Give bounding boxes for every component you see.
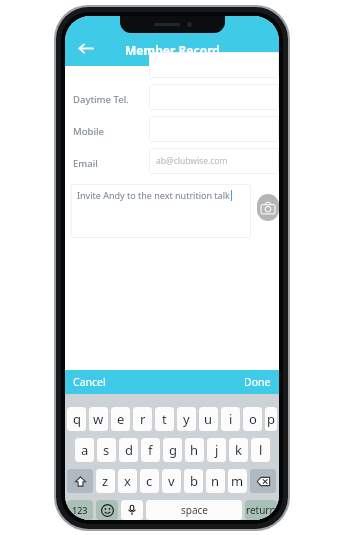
staticText: a — [81, 441, 89, 459]
staticText: n — [211, 472, 220, 490]
button[interactable]: Take photo — [257, 194, 279, 221]
button[interactable]: d — [119, 438, 138, 462]
staticText: e — [117, 410, 125, 428]
button[interactable] — [149, 52, 279, 78]
button[interactable]: b — [184, 469, 203, 493]
button[interactable]: r — [133, 407, 152, 431]
button[interactable]: s — [97, 438, 116, 462]
button[interactable]: m — [228, 469, 247, 493]
button[interactable]: i — [221, 407, 240, 431]
staticText: Mobile — [73, 125, 104, 138]
staticText: v — [168, 472, 175, 490]
staticText: ab@clubwise.com — [156, 155, 228, 167]
button[interactable]: u — [199, 407, 218, 431]
staticText: h — [190, 441, 199, 459]
staticText: return — [246, 503, 276, 517]
staticText: Daytime Tel. — [73, 93, 129, 106]
staticText: p — [267, 410, 275, 428]
staticText: z — [102, 472, 109, 490]
button[interactable]: Cancel — [73, 370, 106, 394]
staticText: o — [249, 410, 257, 428]
button[interactable]: Voice input — [121, 500, 143, 520]
staticText: b — [190, 472, 198, 490]
staticText: u — [204, 410, 213, 428]
button[interactable]: Emoji — [96, 500, 118, 520]
staticText: m — [231, 472, 244, 490]
button[interactable]: 123 — [67, 500, 93, 520]
button[interactable]: f — [141, 438, 160, 462]
staticText: c — [146, 472, 153, 490]
button[interactable]: o — [243, 407, 262, 431]
button[interactable]: y — [177, 407, 196, 431]
staticText: y — [183, 410, 190, 428]
button[interactable]: space — [146, 500, 242, 520]
button[interactable]: Invite Andy to the next nutrition talk — [71, 184, 251, 238]
staticText: w — [93, 410, 104, 428]
staticText: s — [103, 441, 110, 459]
button[interactable] — [149, 84, 279, 110]
button[interactable]: Done — [244, 370, 271, 394]
button[interactable]: Shift — [67, 469, 93, 493]
staticText: Cancel — [73, 375, 106, 389]
staticText: Done — [244, 375, 271, 389]
staticText: j — [215, 441, 219, 459]
button[interactable]: ab@clubwise.com — [149, 148, 279, 174]
button[interactable]: c — [140, 469, 159, 493]
staticText: k — [235, 441, 242, 459]
staticText: t — [162, 410, 167, 428]
staticText: Invite Andy to the next nutrition talk — [77, 189, 230, 201]
button[interactable]: a — [75, 438, 94, 462]
staticText: g — [169, 441, 177, 459]
button[interactable]: z — [96, 469, 115, 493]
staticText: l — [259, 441, 263, 459]
button[interactable]: e — [111, 407, 130, 431]
staticText: i — [229, 410, 233, 428]
staticText: Member Record — [125, 42, 220, 58]
button[interactable]: v — [162, 469, 181, 493]
button[interactable]: Backspace — [250, 469, 276, 493]
staticText: f — [148, 441, 153, 459]
button[interactable]: return — [245, 500, 277, 520]
staticText: r — [140, 410, 146, 428]
staticText: x — [124, 472, 131, 490]
staticText: q — [73, 410, 81, 428]
button[interactable]: k — [229, 438, 248, 462]
staticText: 123 — [72, 504, 88, 516]
button[interactable]: Back — [71, 34, 99, 62]
button[interactable]: x — [118, 469, 137, 493]
staticText: space — [181, 503, 208, 517]
button[interactable]: j — [207, 438, 226, 462]
button[interactable]: q — [67, 407, 86, 431]
staticText: Email — [73, 157, 98, 170]
button[interactable]: p — [265, 407, 277, 431]
button[interactable]: t — [155, 407, 174, 431]
staticText: d — [125, 441, 133, 459]
button[interactable] — [149, 116, 279, 142]
button[interactable]: g — [163, 438, 182, 462]
button[interactable]: l — [251, 438, 270, 462]
button[interactable]: n — [206, 469, 225, 493]
button[interactable]: w — [89, 407, 108, 431]
button[interactable]: h — [185, 438, 204, 462]
